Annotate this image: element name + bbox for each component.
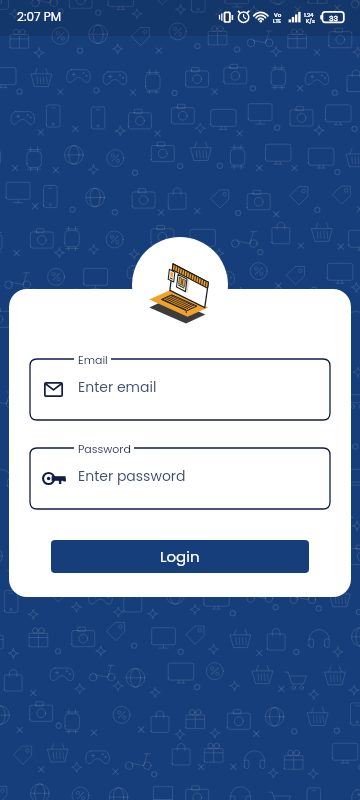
staticText: Enter password [78, 466, 186, 486]
staticText: K/s [306, 17, 315, 25]
staticText: Enter email [78, 377, 157, 397]
staticText: 2:07 PM [17, 8, 62, 25]
staticText: Password [78, 441, 131, 456]
staticText: Email [78, 352, 108, 367]
staticText: Login [160, 546, 200, 567]
staticText: Vo [274, 11, 282, 19]
button[interactable]: Login [51, 540, 309, 573]
staticText: 33 [329, 13, 338, 23]
staticText: LTE [273, 17, 282, 25]
staticText: 1.24 [304, 11, 314, 19]
button[interactable]: Password [30, 438, 330, 509]
button[interactable]: Email [30, 349, 330, 420]
